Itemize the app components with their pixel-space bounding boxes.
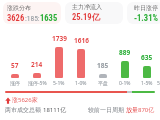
staticText: 主力净流入 <box>72 3 102 11</box>
staticText: 1739 <box>52 34 67 43</box>
staticText: 两市成交总额 <box>5 106 43 114</box>
staticText: 放量870亿 <box>126 106 155 114</box>
staticText: 0-1% <box>119 80 131 87</box>
staticText: 214 <box>31 60 43 69</box>
staticText: 涨停 <box>10 80 20 86</box>
staticText: 5-1% <box>53 80 65 87</box>
staticText: 3626 <box>7 13 25 23</box>
staticText: 1-0% <box>75 80 87 87</box>
staticText: 18111亿 <box>43 106 67 114</box>
button[interactable]: 昨日涨停表现 <box>127 2 160 24</box>
staticText: -1.31% <box>134 13 158 23</box>
staticText: 25.19亿 <box>72 12 101 23</box>
staticText: 5-10% <box>157 80 160 87</box>
staticText: 889 <box>119 48 131 57</box>
staticText: 185 <box>97 61 109 70</box>
staticText: 1616 <box>74 36 89 45</box>
staticText: 平盘 <box>98 80 108 86</box>
staticText: 涨跌分布 <box>7 4 31 12</box>
staticText: :185: <box>25 14 40 23</box>
staticText: 涨停-5% <box>28 80 47 87</box>
staticText: 昨日涨停表现 <box>134 4 160 12</box>
staticText: 57 <box>11 61 19 70</box>
staticText: 1635 <box>40 13 58 23</box>
staticText: 635 <box>141 53 153 62</box>
staticText: 涨5626家 <box>12 96 38 104</box>
staticText: 1-5% <box>141 80 153 87</box>
button[interactable]: 主力净流入 <box>65 2 123 24</box>
staticText: 较前一日周期 <box>88 106 126 114</box>
button[interactable]: 涨跌分布 <box>3 2 61 24</box>
